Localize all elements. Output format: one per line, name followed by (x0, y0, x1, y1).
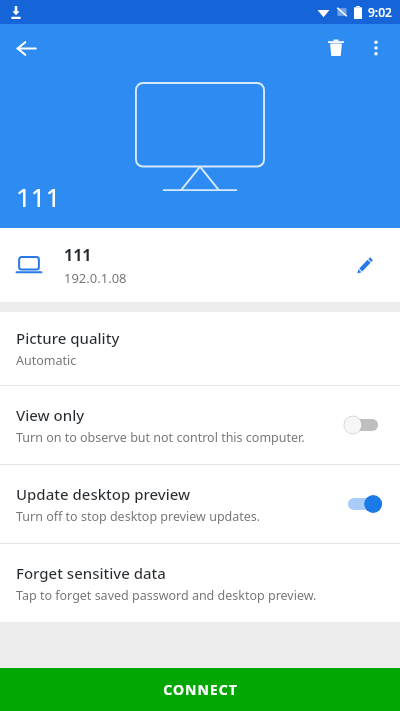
staticText: Forget sensitive data (16, 563, 166, 583)
staticText: Tap to forget saved password and desktop… (16, 587, 317, 604)
button[interactable]: View only (0, 386, 400, 464)
button[interactable]: Edit (344, 245, 384, 285)
button[interactable]: Update desktop preview (0, 465, 400, 543)
button[interactable]: Picture quality (0, 312, 400, 385)
button[interactable]: Delete (316, 28, 356, 68)
button[interactable]: Forget sensitive data (0, 544, 400, 622)
staticText: 9:02 (368, 4, 392, 20)
staticText: Update desktop preview (16, 484, 191, 504)
button[interactable]: Toggle on (342, 489, 384, 519)
staticText: Automatic (16, 352, 77, 369)
staticText: 111 (64, 244, 92, 266)
button[interactable]: More options (356, 28, 396, 68)
staticText: View only (16, 405, 85, 425)
button[interactable]: Back (6, 28, 46, 68)
staticText: CONNECT (163, 680, 238, 699)
staticText: Picture quality (16, 328, 120, 348)
staticText: 111 (16, 179, 61, 214)
button[interactable]: Toggle off (342, 410, 384, 440)
staticText: Turn off to stop desktop preview updates… (16, 508, 261, 525)
staticText: 192.0.1.08 (64, 269, 127, 287)
button[interactable]: CONNECT (0, 668, 400, 711)
button[interactable]: 111 (0, 228, 400, 302)
staticText: Turn on to observe but not control this … (16, 429, 305, 446)
